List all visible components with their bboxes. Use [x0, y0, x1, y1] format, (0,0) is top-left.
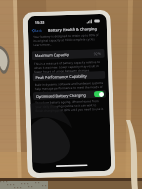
button[interactable]: Optimised Battery Charging	[36, 90, 104, 100]
staticText: Battery Health & Charging	[48, 26, 97, 33]
staticText: 92%	[94, 51, 102, 56]
staticText: Peak Performance Capability	[35, 73, 87, 80]
staticText: Back	[34, 28, 42, 33]
staticText: Optimised Battery Charging	[36, 92, 86, 99]
button[interactable]: Peak Performance Capability	[35, 71, 102, 81]
button[interactable]: Back	[31, 28, 43, 33]
staticText: Built-in dynamic software and hardware s…	[35, 81, 104, 95]
staticText: This is a measure of battery capacity re…	[34, 60, 103, 74]
staticText: Your battery is designed to retain up to…	[33, 33, 102, 47]
staticText: Maximum Capacity	[35, 52, 70, 58]
staticText: 15:33	[35, 20, 45, 25]
staticText: To reduce battery ageing, iPhone learns …	[35, 99, 104, 113]
button[interactable]: Optimised Battery Charging toggle	[94, 91, 104, 97]
button[interactable]: Maximum Capacity	[35, 49, 102, 60]
